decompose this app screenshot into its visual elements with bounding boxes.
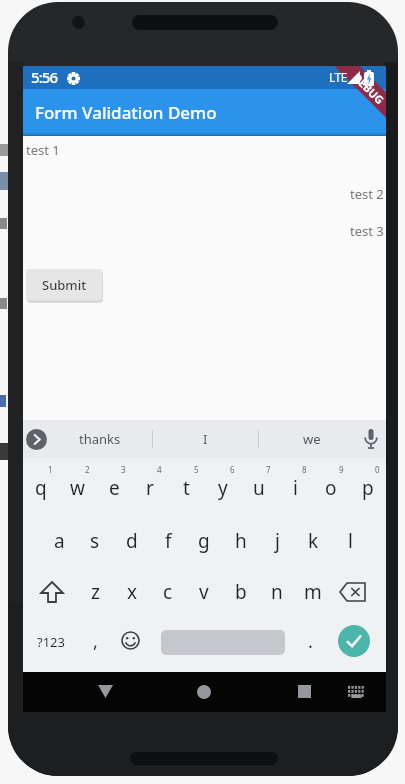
- staticText: Form Validation Demo: [35, 101, 217, 124]
- staticText: LTE: [329, 69, 347, 85]
- staticText: w: [70, 475, 85, 501]
- staticText: 5: [194, 464, 199, 475]
- staticText: y: [218, 475, 228, 501]
- staticText: g: [198, 528, 210, 554]
- staticText: 6: [230, 464, 235, 475]
- staticText: ,: [93, 629, 98, 654]
- staticText: u: [253, 475, 265, 501]
- staticText: 9: [339, 464, 344, 475]
- staticText: l: [348, 528, 353, 554]
- staticText: o: [325, 475, 337, 501]
- staticText: 4: [157, 464, 162, 475]
- staticText: 0: [375, 464, 380, 475]
- staticText: 2: [85, 464, 90, 475]
- staticText: k: [308, 528, 319, 554]
- staticText: a: [54, 528, 65, 554]
- staticText: r: [146, 475, 154, 501]
- staticText: test 1: [26, 141, 60, 159]
- staticText: Submit: [42, 276, 87, 294]
- staticText: I: [203, 430, 208, 448]
- staticText: 8: [302, 464, 307, 475]
- staticText: s: [90, 528, 100, 554]
- staticText: we: [303, 430, 321, 448]
- staticText: 1: [48, 464, 53, 475]
- staticText: j: [275, 528, 280, 554]
- staticText: m: [304, 579, 322, 605]
- staticText: DEBUG: [350, 70, 386, 107]
- staticText: 7: [266, 464, 271, 475]
- staticText: .: [308, 629, 313, 654]
- staticText: test 3: [350, 222, 384, 240]
- staticText: 3: [121, 464, 126, 475]
- staticText: p: [362, 475, 374, 501]
- staticText: t: [183, 475, 190, 501]
- staticText: i: [293, 475, 298, 501]
- staticText: c: [163, 579, 173, 605]
- staticText: b: [235, 579, 247, 605]
- staticText: h: [235, 528, 247, 554]
- staticText: x: [127, 579, 138, 605]
- staticText: v: [199, 579, 209, 605]
- staticText: e: [109, 475, 120, 501]
- staticText: thanks: [79, 430, 121, 448]
- staticText: n: [271, 579, 283, 605]
- staticText: test 2: [350, 185, 384, 203]
- staticText: q: [35, 475, 47, 501]
- staticText: z: [91, 579, 100, 605]
- staticText: f: [165, 528, 172, 554]
- staticText: ?123: [37, 633, 65, 651]
- staticText: d: [126, 528, 138, 554]
- staticText: 5:56: [31, 67, 58, 87]
